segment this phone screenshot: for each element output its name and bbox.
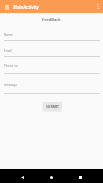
button[interactable]: More options xyxy=(92,0,103,13)
button[interactable]: Name xyxy=(4,33,13,37)
button[interactable]: Email xyxy=(4,49,12,53)
staticText: SUBMIT xyxy=(46,104,59,109)
button[interactable]: Phone no xyxy=(4,64,18,68)
button[interactable]: message xyxy=(4,83,17,87)
staticText: MainActivity xyxy=(13,4,39,10)
button[interactable]: SUBMIT xyxy=(43,102,62,111)
button[interactable]: Navigation menu xyxy=(0,0,13,13)
button[interactable]: Home xyxy=(37,169,66,183)
button[interactable]: Back xyxy=(8,169,37,183)
staticText: FeedBack xyxy=(42,17,61,22)
button[interactable]: Recent apps xyxy=(66,169,95,183)
